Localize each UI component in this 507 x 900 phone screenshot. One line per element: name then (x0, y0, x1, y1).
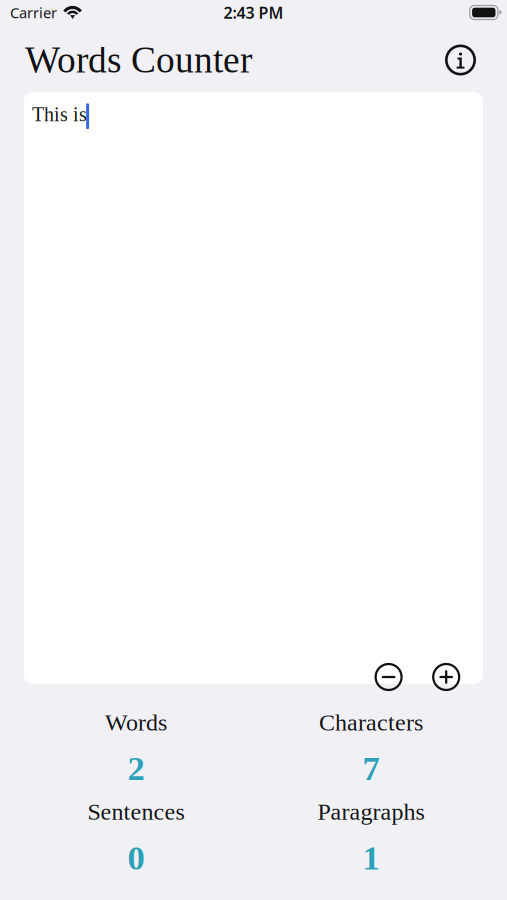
staticText: Carrier (10, 3, 57, 22)
staticText: 2:43 PM (223, 2, 283, 23)
button[interactable]: This is (24, 92, 483, 684)
staticText: Characters (319, 709, 423, 736)
staticText: 0 (127, 838, 144, 877)
button[interactable]: Decrease text size (374, 662, 404, 692)
staticText: 2 (127, 749, 144, 788)
staticText: This is (32, 103, 87, 125)
staticText: 1 (362, 838, 379, 877)
staticText: Words Counter (25, 39, 252, 81)
staticText: Words (105, 709, 167, 736)
button[interactable]: Info (445, 44, 476, 75)
button[interactable]: Increase text size (431, 662, 461, 692)
staticText: Sentences (87, 798, 184, 825)
staticText: Paragraphs (317, 798, 424, 825)
staticText: 7 (362, 749, 379, 788)
